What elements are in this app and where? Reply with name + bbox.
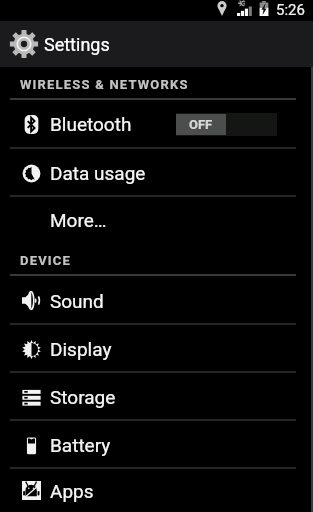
staticText: More…	[50, 209, 107, 231]
staticText: Apps	[50, 480, 94, 502]
staticText: OFF	[189, 117, 213, 132]
button[interactable]: Storage	[0, 373, 313, 421]
staticText: Display	[50, 338, 112, 360]
button[interactable]: Battery	[0, 421, 313, 469]
staticText: Sound	[50, 290, 104, 312]
button[interactable]: Data usage	[0, 149, 313, 197]
button[interactable]: Bluetooth	[0, 99, 313, 149]
staticText: WIRELESS & NETWORKS	[20, 77, 189, 92]
button[interactable]: Settings	[0, 21, 313, 67]
staticText: Bluetooth	[50, 113, 132, 135]
staticText: Storage	[50, 386, 116, 408]
button[interactable]: Display	[0, 325, 313, 373]
button[interactable]: More…	[0, 197, 313, 243]
staticText: DEVICE	[20, 253, 72, 268]
staticText: 5:26	[276, 1, 305, 19]
button[interactable]: Sound	[0, 276, 313, 325]
button[interactable]: Bluetooth toggle, off	[176, 113, 277, 136]
staticText: Settings	[44, 34, 110, 55]
staticText: Data usage	[50, 162, 146, 184]
staticText: Battery	[50, 434, 111, 456]
button[interactable]: Apps	[0, 469, 313, 512]
